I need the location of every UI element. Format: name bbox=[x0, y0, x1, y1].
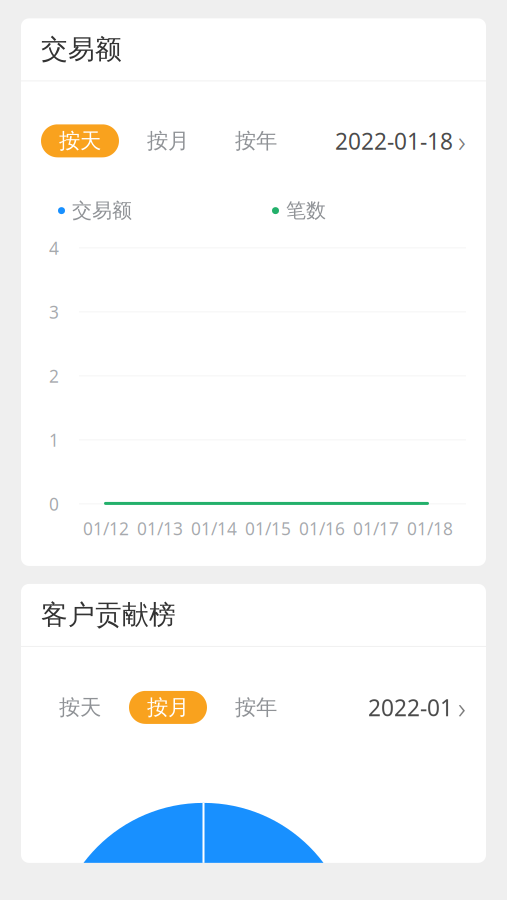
button[interactable]: 按月 bbox=[129, 124, 207, 157]
staticText: › bbox=[458, 688, 466, 727]
staticText: 0 bbox=[49, 492, 59, 515]
staticText: 按天 bbox=[59, 694, 101, 720]
button[interactable]: 2022-01-18 bbox=[335, 115, 466, 166]
staticText: 01/15 bbox=[245, 517, 291, 540]
staticText: 按年 bbox=[235, 694, 277, 720]
staticText: 01/14 bbox=[191, 517, 237, 540]
staticText: 2022-01 bbox=[368, 692, 453, 722]
staticText: 01/16 bbox=[299, 517, 345, 540]
staticText: 按月 bbox=[147, 128, 189, 154]
staticText: 1 bbox=[49, 428, 59, 451]
staticText: 交易额 bbox=[41, 33, 122, 66]
staticText: 01/12 bbox=[83, 517, 129, 540]
button[interactable]: 按年 bbox=[217, 691, 295, 724]
staticText: 01/17 bbox=[353, 517, 399, 540]
staticText: 3 bbox=[49, 300, 59, 323]
staticText: 按天 bbox=[59, 128, 101, 154]
button[interactable]: 按月 bbox=[129, 691, 207, 724]
button[interactable]: 按年 bbox=[217, 124, 295, 157]
staticText: 01/13 bbox=[137, 517, 183, 540]
staticText: 交易额 bbox=[72, 198, 132, 223]
staticText: 笔数 bbox=[286, 198, 326, 223]
button[interactable]: 按天 bbox=[41, 124, 119, 157]
staticText: 4 bbox=[49, 236, 59, 259]
staticText: 客户贡献榜 bbox=[41, 598, 176, 631]
staticText: 01/18 bbox=[407, 517, 453, 540]
staticText: › bbox=[458, 121, 466, 160]
button[interactable]: 2022-01 bbox=[368, 682, 466, 733]
staticText: 按月 bbox=[147, 694, 189, 720]
staticText: 按年 bbox=[235, 128, 277, 154]
button[interactable]: 按天 bbox=[41, 691, 119, 724]
staticText: 2 bbox=[49, 364, 59, 387]
staticText: 2022-01-18 bbox=[335, 126, 453, 156]
